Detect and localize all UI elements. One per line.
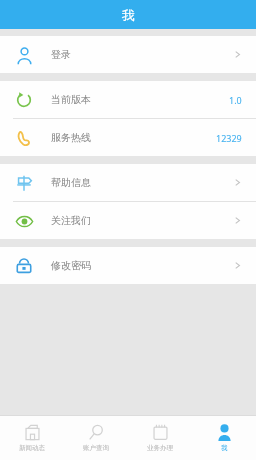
button[interactable]: 业务办理 (128, 416, 192, 460)
staticText: 1.0 (229, 94, 242, 106)
staticText: 新闻动态 (19, 444, 45, 452)
button[interactable]: 帮助信息 (0, 164, 256, 201)
staticText: 12329 (216, 132, 242, 144)
staticText: 我 (221, 444, 228, 452)
staticText: 账户查询 (83, 444, 109, 452)
staticText: 我 (122, 7, 135, 23)
staticText: 业务办理 (147, 444, 173, 452)
button[interactable]: 修改密码 (0, 247, 256, 284)
staticText: 登录 (51, 48, 71, 61)
staticText: 修改密码 (51, 259, 91, 272)
staticText: 当前版本 (51, 93, 91, 106)
button[interactable]: 服务热线 (0, 119, 256, 156)
button[interactable]: 登录 (0, 36, 256, 73)
staticText: 关注我们 (51, 214, 91, 227)
button[interactable]: 账户查询 (64, 416, 128, 460)
staticText: 帮助信息 (51, 176, 91, 189)
button[interactable]: 我 (192, 416, 256, 460)
button[interactable]: 当前版本 (0, 81, 256, 118)
staticText: 服务热线 (51, 131, 91, 144)
button[interactable]: 新闻动态 (0, 416, 64, 460)
button[interactable]: 关注我们 (0, 202, 256, 239)
